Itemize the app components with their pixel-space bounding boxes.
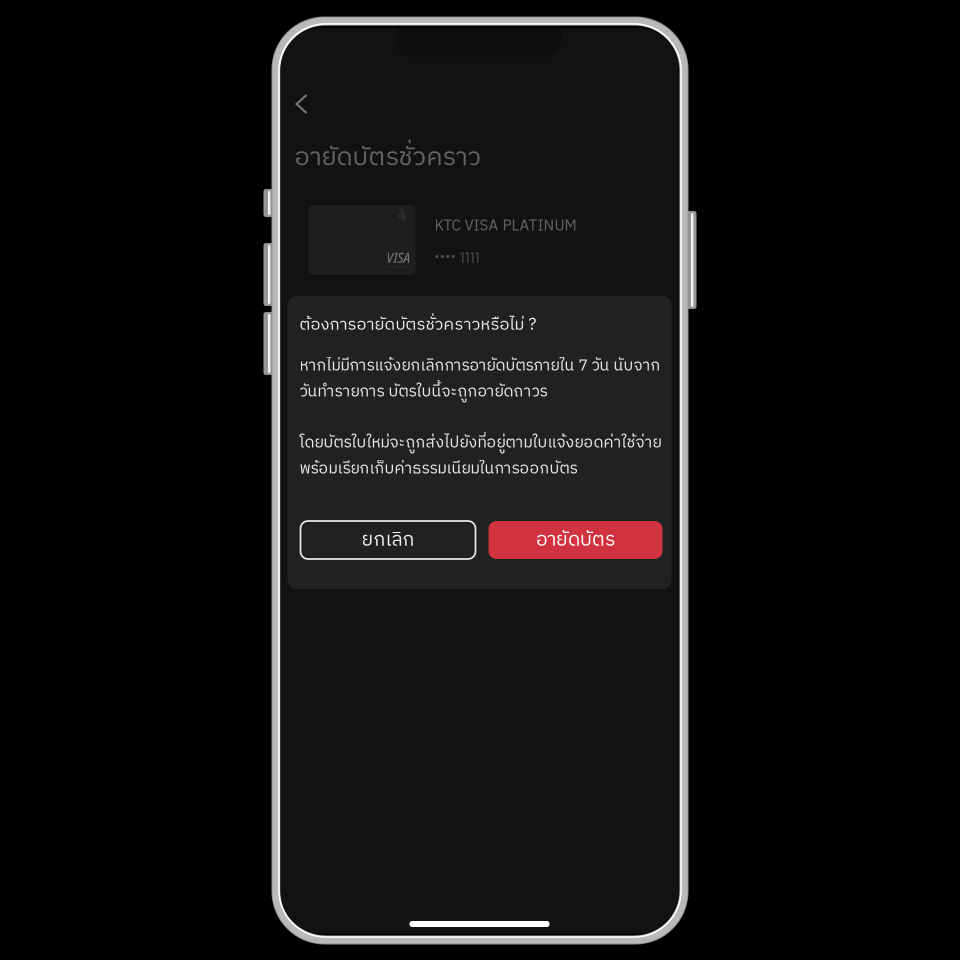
staticText: อายัดบัตร [536, 524, 615, 556]
button[interactable]: อายัดบัตร [488, 521, 662, 559]
staticText: วันทำรายการ บัตรใบนี้จะถูกอายัดถาวร [299, 379, 547, 405]
staticText: VISA [386, 247, 410, 267]
staticText: โดยบัตรใบใหม่จะถูกส่งไปยังที่อยู่ตามใบแจ… [299, 430, 661, 456]
staticText: พร้อมเรียกเก็บค่าธรรมเนียมในการออกบัตร [299, 456, 577, 482]
staticText: อายัดบัตรชั่วคราว [294, 137, 481, 179]
staticText: KTC VISA PLATINUM [434, 214, 576, 238]
staticText: ต้องการอายัดบัตรชั่วคราวหรือไม่ ? [299, 311, 536, 339]
staticText: หากไม่มีการแจ้งยกเลิกการอายัดบัตรภายใน 7… [299, 353, 660, 379]
staticText: ยกเลิก [361, 524, 414, 556]
button[interactable]: Back [279, 82, 323, 126]
staticText: 1111 [459, 248, 479, 266]
button[interactable]: ยกเลิก [300, 521, 475, 559]
